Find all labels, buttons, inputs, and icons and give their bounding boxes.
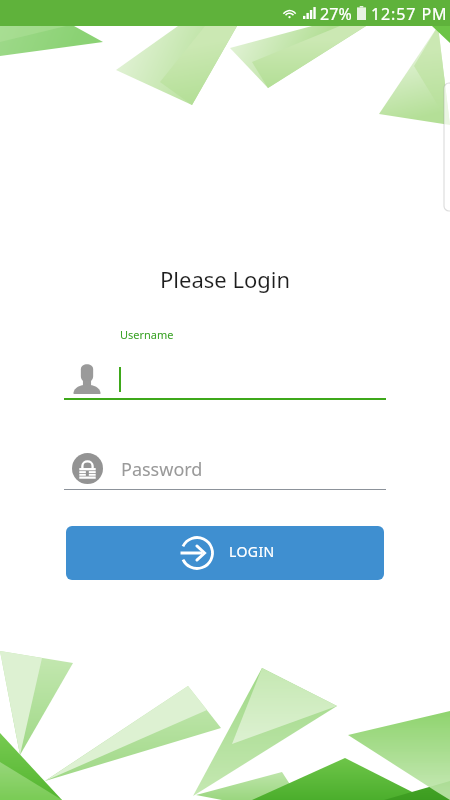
staticText: 27% — [320, 3, 352, 25]
staticText: Please Login — [160, 264, 291, 294]
button[interactable]: LOGIN — [66, 526, 384, 580]
staticText: Username — [120, 327, 174, 342]
staticText: 12:57 PM — [371, 3, 448, 25]
staticText: LOGIN — [229, 542, 275, 561]
staticText: Password — [121, 457, 203, 482]
